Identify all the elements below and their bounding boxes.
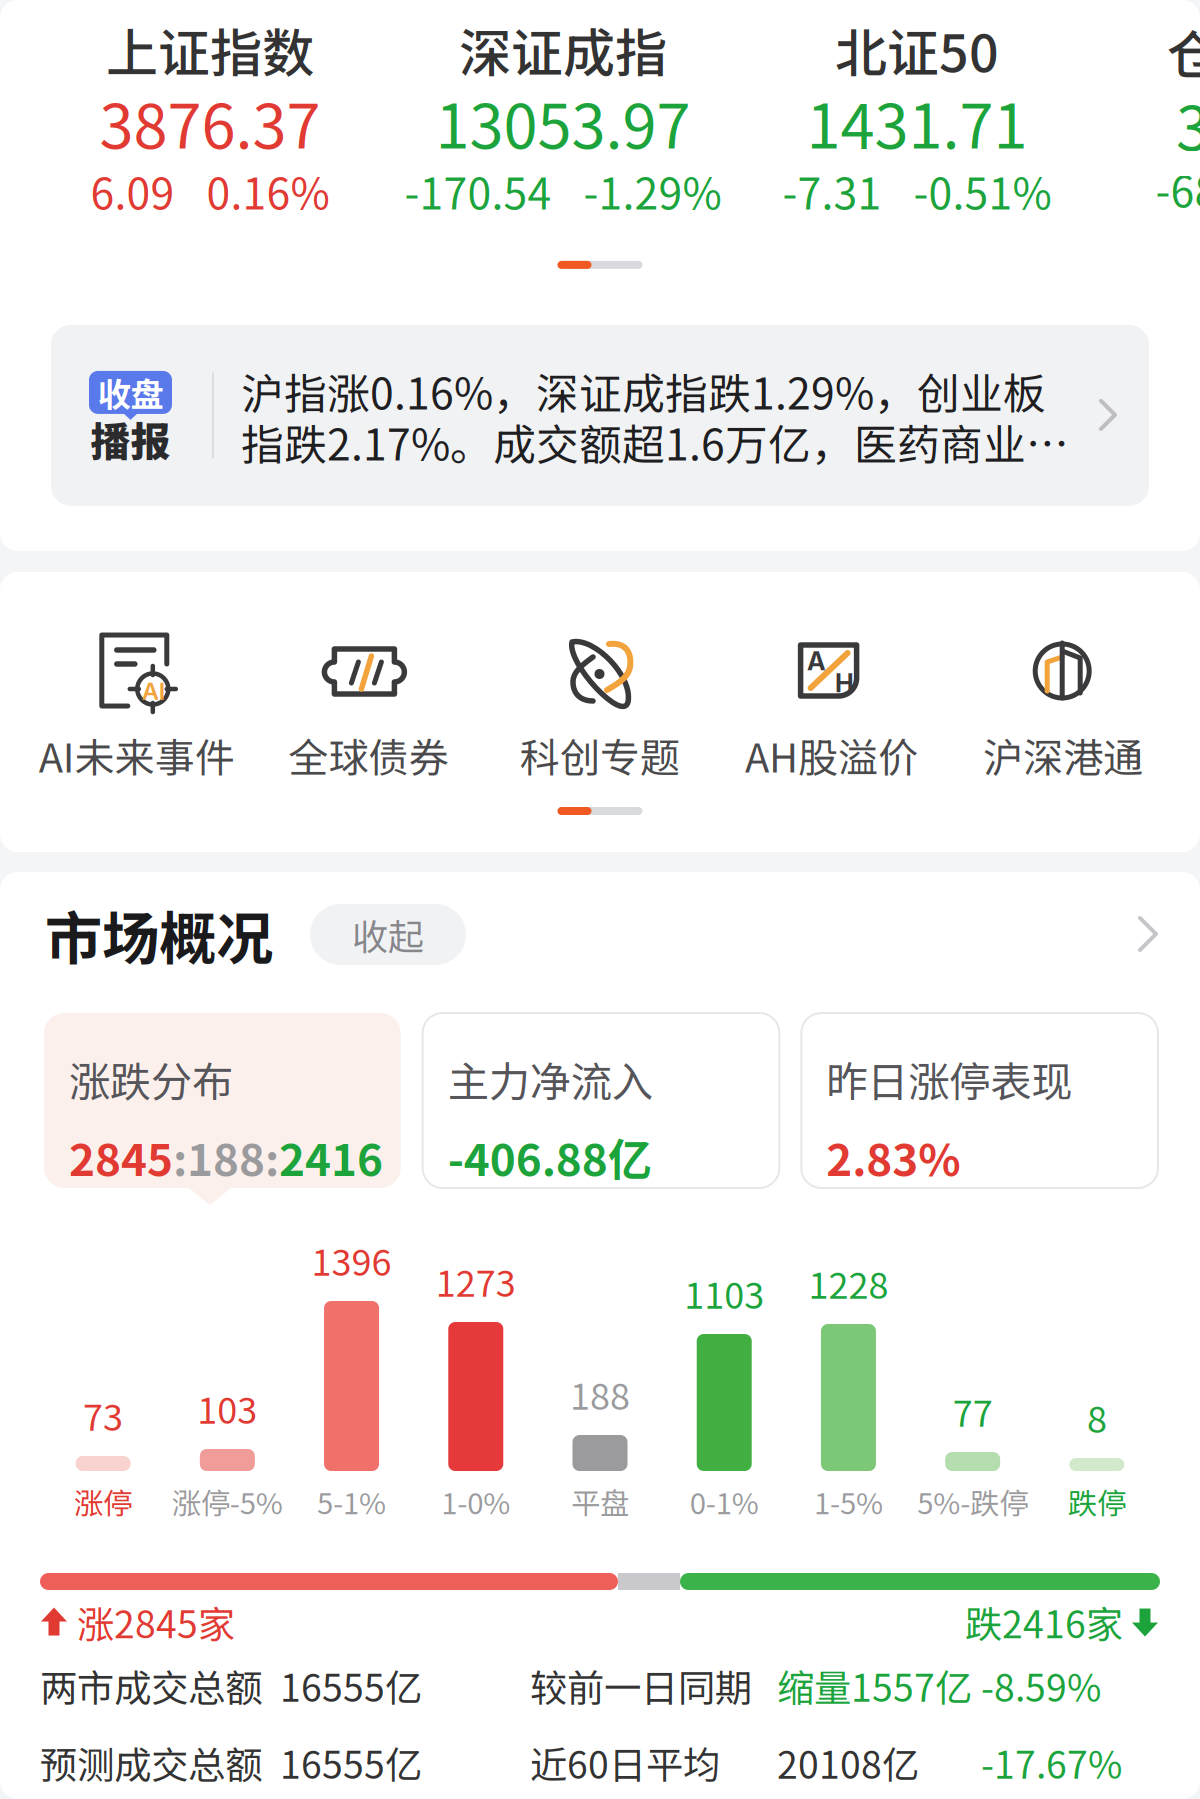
staticText: A — [807, 646, 826, 676]
staticText: 5-1% — [317, 1480, 386, 1523]
staticText: 1273 — [436, 1255, 516, 1307]
staticText: 3876.37 — [99, 77, 320, 166]
button[interactable]: A — [716, 631, 947, 784]
staticText: 较前一日同期 — [530, 1658, 752, 1713]
staticText: 昨日涨停表现 — [826, 1049, 1072, 1109]
staticText: 20108亿 — [777, 1735, 919, 1790]
staticText: -170.54 — [404, 160, 551, 222]
staticText: 全球债券 — [288, 726, 448, 784]
button[interactable]: AI — [21, 631, 253, 784]
staticText: AI未来事件 — [39, 726, 235, 784]
staticText: 6.09 — [90, 160, 174, 222]
staticText: 市场概况 — [45, 893, 273, 976]
staticText: 2.83% — [826, 1125, 960, 1189]
staticText: 上证指数 — [106, 12, 314, 87]
staticText: 深证成指 — [459, 12, 667, 87]
staticText: 2416 — [279, 1125, 383, 1189]
button[interactable]: 科创专题 — [484, 631, 716, 784]
staticText: 沪指涨0.16%，深证成指跌1.29%，创业板 — [241, 360, 1046, 422]
staticText: 平盘 — [571, 1480, 629, 1523]
staticText: 播报 — [90, 410, 170, 468]
staticText: 预测成交总额 — [40, 1735, 262, 1790]
staticText: 涨停-5% — [172, 1480, 283, 1523]
staticText: -7.31 — [782, 160, 881, 222]
staticText: 2845 — [69, 1125, 173, 1189]
staticText: -0.51% — [913, 160, 1051, 222]
staticText: -1.29% — [583, 160, 721, 222]
staticText: 1431.71 — [806, 77, 1027, 166]
staticText: AH股溢价 — [745, 726, 918, 784]
staticText: 8 — [1087, 1391, 1107, 1443]
staticText: 1228 — [808, 1257, 888, 1309]
staticText: 188 — [570, 1368, 630, 1420]
staticText: 73 — [83, 1389, 123, 1441]
staticText: 仓 — [1167, 14, 1200, 89]
staticText: 13053.97 — [435, 77, 690, 166]
staticText: : — [265, 1125, 279, 1189]
staticText: 涨2845家 — [77, 1595, 235, 1649]
staticText: 1-5% — [814, 1480, 883, 1523]
button[interactable]: 收盘 — [51, 325, 1149, 506]
staticText: 涨停 — [74, 1480, 132, 1523]
button[interactable]: 昨日涨停表现 — [801, 1013, 1158, 1188]
staticText: 指跌2.17%。成交额超1.6万亿，医药商业… — [241, 411, 1069, 473]
staticText: 科创专题 — [520, 726, 680, 784]
staticText: 沪深港通 — [983, 726, 1143, 784]
staticText: 收起 — [352, 908, 424, 960]
staticText: 188 — [187, 1125, 265, 1189]
staticText: 1103 — [684, 1267, 764, 1319]
staticText: 缩量1557亿 — [777, 1658, 972, 1713]
staticText: 涨跌分布 — [69, 1049, 233, 1109]
staticText: 主力净流入 — [448, 1049, 653, 1109]
staticText: 跌停 — [1068, 1480, 1126, 1523]
staticText: 0.16% — [206, 160, 329, 222]
staticText: 收盘 — [97, 368, 163, 417]
button[interactable]: 沪深港通 — [947, 631, 1179, 784]
button[interactable]: 涨跌分布 — [44, 1013, 401, 1188]
staticText: 77 — [953, 1385, 993, 1437]
staticText: -406.88亿 — [448, 1125, 652, 1189]
staticText: -68. — [1155, 158, 1200, 220]
staticText: -17.67% — [981, 1735, 1122, 1790]
staticText: AI — [142, 676, 165, 705]
button[interactable]: 主力净流入 — [423, 1013, 779, 1188]
button[interactable]: 收起 — [310, 904, 466, 965]
staticText: 5%-跌停 — [917, 1480, 1028, 1523]
staticText: 两市成交总额 — [40, 1658, 262, 1713]
staticText: 近60日平均 — [530, 1735, 720, 1790]
staticText: 1-0% — [441, 1480, 510, 1523]
staticText: 北证50 — [835, 12, 999, 87]
button[interactable]: 全球债券 — [253, 631, 484, 784]
staticText: H — [835, 668, 854, 698]
staticText: 16555亿 — [280, 1735, 422, 1790]
staticText: 1396 — [312, 1234, 392, 1286]
staticText: 跌2416家 — [965, 1595, 1123, 1649]
staticText: 0-1% — [690, 1480, 759, 1523]
staticText: : — [173, 1125, 187, 1189]
staticText: -8.59% — [981, 1658, 1101, 1713]
staticText: 3 — [1176, 79, 1200, 168]
staticText: 16555亿 — [280, 1658, 422, 1713]
staticText: 103 — [197, 1382, 257, 1434]
